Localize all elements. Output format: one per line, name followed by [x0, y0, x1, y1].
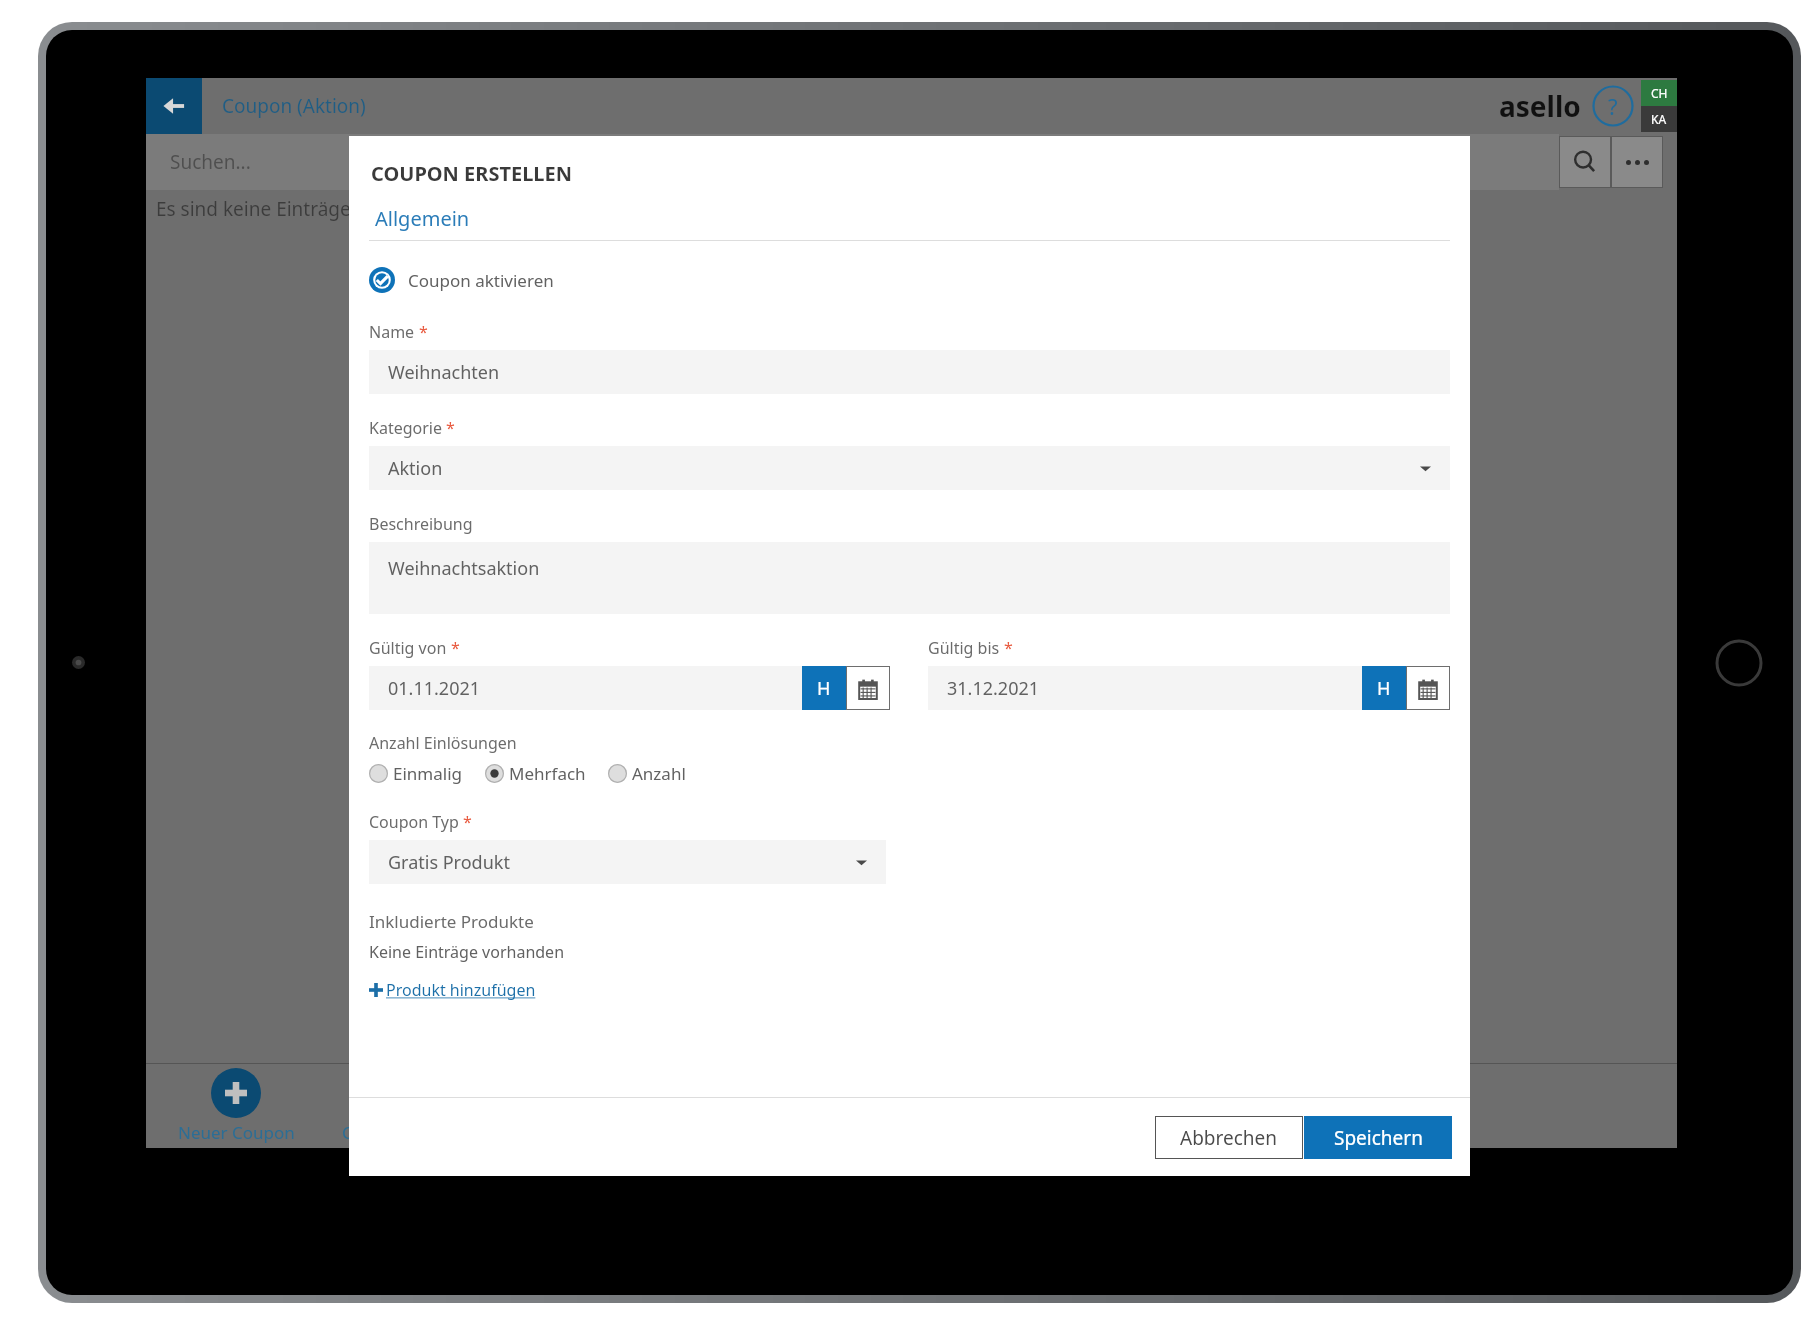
staticText: KA: [1651, 111, 1667, 127]
staticText: asello: [1499, 87, 1581, 125]
button[interactable]: Abbrechen: [1155, 1116, 1303, 1159]
staticText: 01.11.2021: [388, 676, 481, 701]
button[interactable]: Kalender: [846, 666, 890, 710]
button[interactable]: Heute: [802, 666, 846, 710]
button[interactable]: Suche: [1559, 136, 1611, 188]
staticText: Kategorie: [369, 417, 442, 439]
staticText: Suchen...: [170, 149, 251, 175]
staticText: Keine Einträge vorhanden: [369, 941, 565, 963]
button[interactable]: Gratis Produkt: [369, 840, 886, 884]
staticText: Coupon aktivieren: [408, 269, 554, 292]
staticText: H: [1377, 676, 1391, 701]
staticText: Inkludierte Produkte: [369, 910, 534, 933]
button[interactable]: Weihnachtsaktion: [369, 542, 1450, 614]
button[interactable]: Suchen...: [146, 134, 1559, 190]
button[interactable]: Coupon Generator: [326, 1068, 506, 1144]
staticText: Neuer Coupon: [178, 1121, 295, 1144]
button[interactable]: Weihnachten: [369, 350, 1450, 394]
staticText: Gültig von: [369, 637, 447, 659]
staticText: H: [817, 676, 831, 701]
staticText: Aktion: [388, 456, 443, 481]
button[interactable]: 31.12.2021: [928, 666, 1362, 710]
button[interactable]: Anzahl: [608, 762, 686, 785]
staticText: COUPON ERSTELLEN: [371, 160, 572, 187]
button[interactable]: CH: [1641, 80, 1677, 132]
staticText: Mehrfach: [509, 762, 586, 785]
staticText: Weihnachtsaktion: [388, 556, 540, 581]
staticText: *: [419, 321, 428, 343]
staticText: CH: [1651, 85, 1668, 101]
button[interactable]: Mehr: [1611, 136, 1663, 188]
staticText: *: [1004, 637, 1013, 659]
button[interactable]: Hilfe: [1591, 84, 1635, 128]
button[interactable]: Allgemein: [369, 205, 470, 232]
staticText: Name: [369, 321, 415, 343]
staticText: *: [463, 811, 472, 833]
button[interactable]: 01.11.2021: [369, 666, 802, 710]
button[interactable]: Mehrfach: [485, 762, 586, 785]
staticText: Coupon Generator: [342, 1121, 491, 1144]
staticText: ?: [1608, 91, 1618, 121]
button[interactable]: Aktion: [369, 446, 1450, 490]
staticText: Es sind keine Einträge vorhanden: [156, 196, 453, 222]
staticText: *: [451, 637, 460, 659]
button[interactable]: Speichern: [1304, 1116, 1452, 1159]
staticText: 31.12.2021: [947, 676, 1040, 701]
staticText: Beschreibung: [369, 513, 473, 535]
button[interactable]: Neuer Coupon: [146, 1068, 326, 1144]
staticText: Weihnachten: [388, 360, 500, 385]
button[interactable]: Zurück: [146, 78, 202, 134]
staticText: Coupon (Aktion): [222, 93, 366, 119]
staticText: Einmalig: [393, 762, 463, 785]
button[interactable]: Coupon aktivieren: [369, 267, 554, 293]
staticText: Produkt hinzufügen: [386, 979, 536, 1001]
button[interactable]: Heute: [1362, 666, 1406, 710]
staticText: Gratis Produkt: [388, 850, 510, 875]
staticText: Gültig bis: [928, 637, 1000, 659]
staticText: Abbrechen: [1180, 1125, 1278, 1151]
staticText: Coupon Typ: [369, 811, 459, 833]
button[interactable]: Produkt hinzufügen: [369, 979, 536, 1001]
staticText: Anzahl Einlösungen: [369, 732, 517, 754]
staticText: Speichern: [1334, 1125, 1423, 1151]
staticText: *: [446, 417, 455, 439]
button[interactable]: Kalender: [1406, 666, 1450, 710]
staticText: Anzahl: [632, 762, 686, 785]
button[interactable]: Einmalig: [369, 762, 463, 785]
